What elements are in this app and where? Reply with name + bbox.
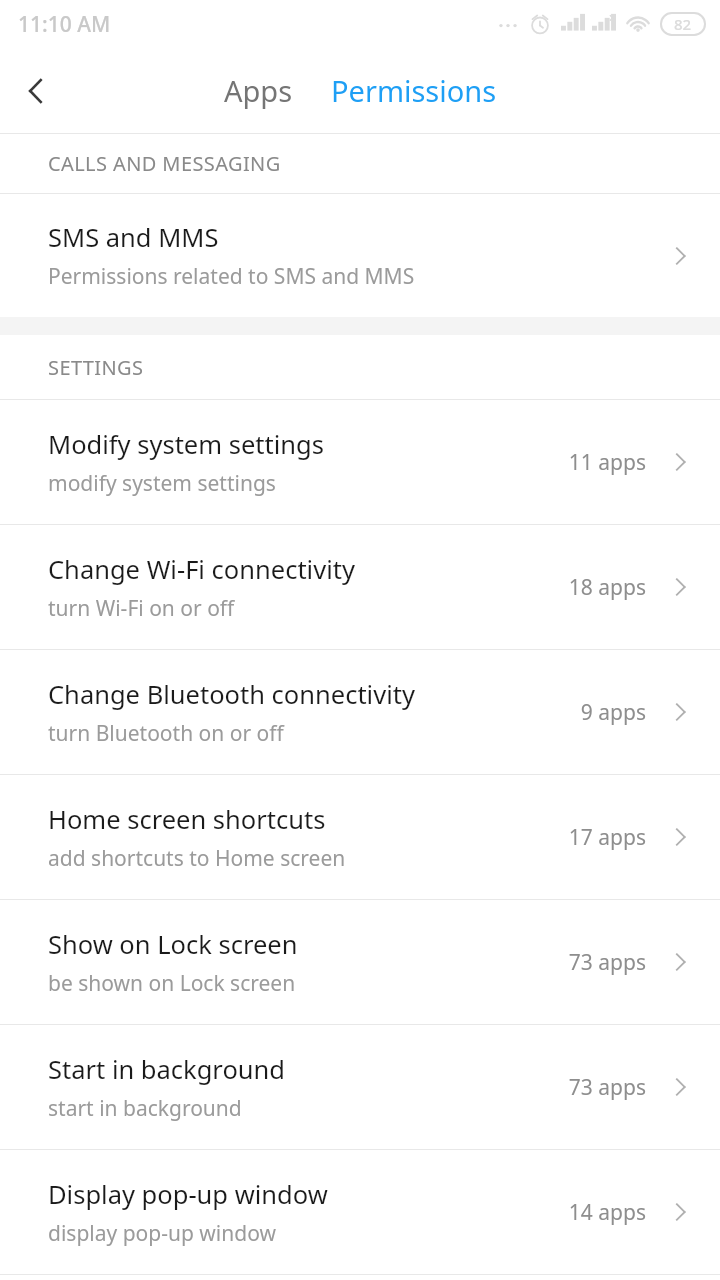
- button[interactable]: Show on Lock screen: [0, 900, 720, 1024]
- staticText: add shortcuts to Home screen: [48, 844, 346, 873]
- staticText: Apps: [224, 71, 293, 110]
- staticText: Permissions: [331, 71, 497, 110]
- staticText: Start in background: [48, 1052, 286, 1087]
- staticText: start in background: [48, 1094, 242, 1123]
- button[interactable]: Permissions: [331, 71, 497, 110]
- staticText: be shown on Lock screen: [48, 969, 296, 998]
- staticText: 18 apps: [568, 573, 646, 602]
- staticText: Change Bluetooth connectivity: [48, 677, 415, 712]
- staticText: 11 apps: [568, 448, 646, 477]
- staticText: 82: [674, 14, 692, 34]
- staticText: Permissions related to SMS and MMS: [48, 262, 415, 291]
- staticText: display pop-up window: [48, 1219, 276, 1248]
- staticText: Display pop-up window: [48, 1177, 328, 1212]
- staticText: 14 apps: [568, 1198, 646, 1227]
- staticText: 17 apps: [568, 823, 646, 852]
- staticText: SMS and MMS: [48, 220, 219, 255]
- staticText: CALLS AND MESSAGING: [48, 150, 281, 177]
- button[interactable]: Apps: [224, 71, 293, 110]
- staticText: Modify system settings: [48, 427, 324, 462]
- button[interactable]: Display pop-up window: [0, 1150, 720, 1274]
- button[interactable]: Modify system settings: [0, 400, 720, 524]
- button[interactable]: Change Bluetooth connectivity: [0, 650, 720, 774]
- staticText: 73 apps: [568, 948, 646, 977]
- staticText: modify system settings: [48, 469, 276, 498]
- staticText: 11:10 AM: [18, 10, 111, 39]
- staticText: turn Wi-Fi on or off: [48, 594, 235, 623]
- button[interactable]: SMS and MMS: [0, 194, 720, 317]
- staticText: Show on Lock screen: [48, 927, 298, 962]
- button[interactable]: Change Wi-Fi connectivity: [0, 525, 720, 649]
- staticText: turn Bluetooth on or off: [48, 719, 284, 748]
- staticText: Home screen shortcuts: [48, 802, 326, 837]
- staticText: 9 apps: [580, 698, 646, 727]
- button[interactable]: Back: [0, 55, 72, 127]
- button[interactable]: Start in background: [0, 1025, 720, 1149]
- staticText: Change Wi-Fi connectivity: [48, 552, 355, 587]
- button[interactable]: Home screen shortcuts: [0, 775, 720, 899]
- staticText: 73 apps: [568, 1073, 646, 1102]
- staticText: SETTINGS: [48, 354, 144, 381]
